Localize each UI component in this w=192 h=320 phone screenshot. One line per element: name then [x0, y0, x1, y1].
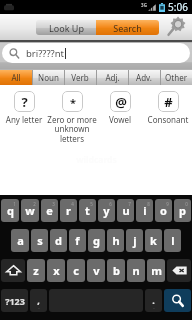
staticText: All — [11, 72, 21, 83]
button[interactable]: w — [21, 199, 39, 222]
staticText: 0 — [185, 201, 188, 207]
staticText: 2 — [33, 201, 36, 207]
staticText: Look Up — [49, 22, 84, 34]
button[interactable]: Search — [164, 289, 191, 312]
staticText: o — [160, 203, 167, 218]
button[interactable]: t — [79, 199, 96, 222]
button[interactable]: i — [136, 199, 153, 222]
button[interactable]: @ — [96, 91, 144, 137]
staticText: l — [171, 233, 175, 248]
staticText: d — [55, 233, 62, 248]
staticText: 8 — [147, 201, 150, 207]
button[interactable]: All — [0, 70, 32, 85]
button[interactable]: a — [11, 229, 29, 252]
staticText: w — [25, 203, 35, 218]
staticText: v — [93, 263, 100, 278]
staticText: * — [70, 95, 76, 110]
button[interactable]: b — [107, 259, 125, 282]
button[interactable]: o — [155, 199, 172, 222]
staticText: Any letter — [0, 114, 70, 125]
staticText: ? — [21, 93, 28, 111]
staticText: r — [66, 203, 71, 218]
button[interactable]: m — [147, 259, 165, 282]
button[interactable]: f — [69, 229, 86, 252]
staticText: Vowel — [74, 114, 166, 125]
staticText: 4 — [71, 201, 74, 207]
button[interactable]: Noun — [32, 70, 64, 85]
button[interactable]: l — [164, 229, 181, 252]
staticText: 7 — [128, 201, 131, 207]
button[interactable]: x — [47, 259, 65, 282]
button[interactable]: e — [41, 199, 58, 222]
staticText: e — [46, 203, 53, 218]
button[interactable]: ?123 — [1, 289, 28, 312]
staticText: _ — [38, 304, 40, 309]
staticText: . — [152, 294, 155, 306]
staticText: k — [150, 233, 157, 248]
button[interactable]: j — [126, 229, 143, 252]
staticText: bri????nt — [26, 47, 65, 60]
staticText: j — [133, 233, 137, 248]
staticText: Verb — [71, 72, 89, 83]
staticText: x — [53, 263, 60, 278]
staticText: _ — [153, 304, 155, 309]
button[interactable]: Look Up — [36, 20, 96, 35]
staticText: , — [37, 294, 40, 306]
staticText: i — [143, 203, 147, 218]
button[interactable]: Adj. — [96, 70, 128, 85]
staticText: t — [85, 203, 90, 218]
button[interactable]: r — [60, 199, 77, 222]
button[interactable]: q — [1, 199, 19, 222]
staticText: Other — [165, 72, 187, 83]
staticText: f — [75, 233, 80, 248]
button[interactable]: Search settings — [164, 14, 188, 38]
button[interactable]: c — [67, 259, 85, 282]
staticText: Noun — [38, 72, 59, 83]
button[interactable]: g — [88, 229, 105, 252]
button[interactable]: k — [145, 229, 162, 252]
button[interactable]: * — [48, 91, 96, 137]
button[interactable]: Search — [96, 20, 159, 35]
staticText: h — [112, 233, 120, 248]
button[interactable]: d — [50, 229, 67, 252]
staticText: y — [103, 203, 110, 218]
staticText: z — [33, 263, 39, 278]
staticText: m — [151, 263, 162, 278]
button[interactable]: z — [27, 259, 45, 282]
button[interactable]: Other — [160, 70, 192, 85]
button[interactable]: . — [145, 289, 162, 312]
staticText: Search — [113, 22, 142, 34]
button[interactable]: s — [31, 229, 48, 252]
staticText: Zero or more unknown letters — [26, 114, 118, 145]
button[interactable]: h — [107, 229, 124, 252]
button[interactable]: v — [87, 259, 105, 282]
staticText: 5:06 — [168, 0, 188, 14]
button[interactable]: u — [117, 199, 134, 222]
button[interactable]: Verb — [64, 70, 96, 85]
staticText: 5 — [90, 201, 93, 207]
staticText: u — [122, 203, 130, 218]
staticText: s — [37, 233, 43, 248]
staticText: Adj. — [105, 72, 120, 83]
staticText: a — [17, 233, 24, 248]
button[interactable]: n — [127, 259, 145, 282]
button[interactable]: Shift — [1, 259, 25, 282]
button[interactable]: y — [98, 199, 115, 222]
staticText: @ — [115, 93, 127, 111]
button[interactable]: Adv. — [128, 70, 160, 85]
button[interactable]: p — [174, 199, 191, 222]
staticText: # — [164, 93, 173, 111]
staticText: Adv. — [136, 72, 152, 83]
button[interactable]: ? — [0, 91, 48, 137]
staticText: 3 — [52, 201, 55, 207]
staticText: c — [73, 263, 79, 278]
staticText: ?123 — [5, 295, 25, 307]
button[interactable]: Delete — [167, 259, 191, 282]
staticText: b — [113, 263, 120, 278]
staticText: 1 — [13, 201, 16, 207]
button[interactable]: bri????nt — [2, 43, 190, 63]
button[interactable]: # — [144, 91, 192, 137]
staticText: p — [179, 203, 186, 218]
button[interactable]: , — [30, 289, 47, 312]
